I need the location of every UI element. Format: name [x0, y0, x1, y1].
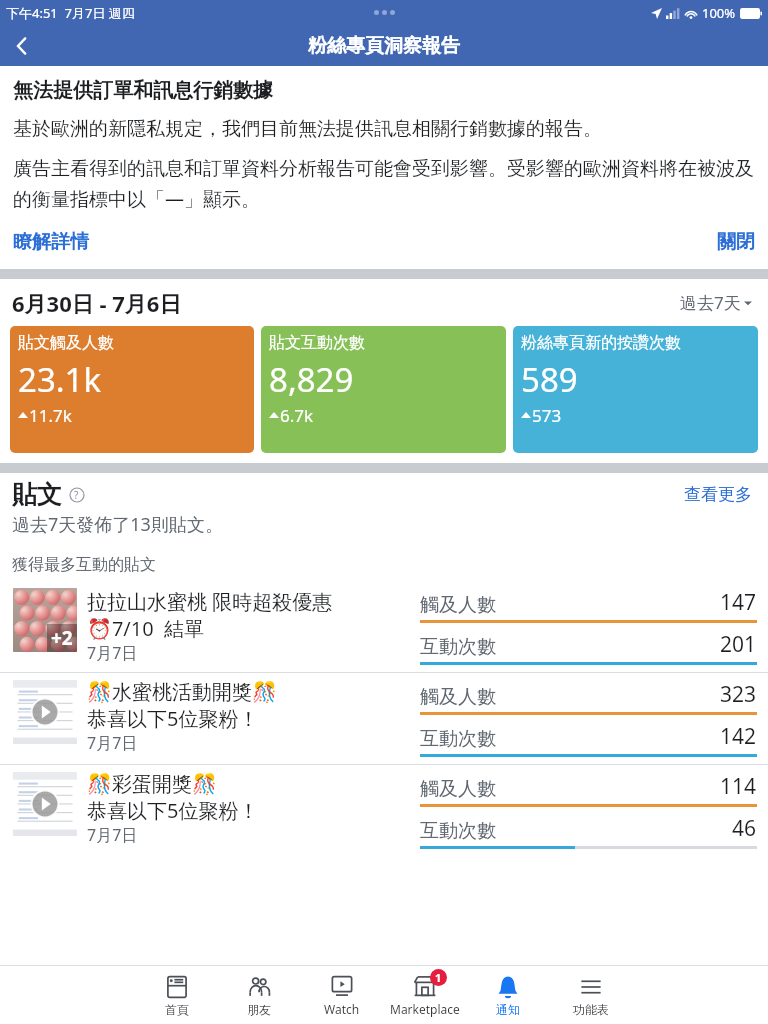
button[interactable]: 關閉 — [717, 227, 755, 257]
staticText: 589 — [521, 357, 578, 402]
staticText: 觸及人數 — [420, 593, 496, 617]
staticText: 7月7日 — [87, 732, 138, 754]
staticText: 貼文觸及人數 — [18, 333, 114, 353]
staticText: 114 — [720, 772, 757, 801]
button[interactable]: Back — [0, 25, 44, 66]
button[interactable]: 過去7天 — [676, 287, 756, 318]
staticText: 粉絲專頁洞察報告 — [308, 34, 460, 58]
button[interactable]: 瞭解詳情 — [13, 227, 89, 257]
staticText: +2 — [51, 625, 73, 651]
button[interactable]: 說明 — [68, 486, 85, 503]
staticText: 恭喜以下5位聚粉！ — [87, 705, 259, 732]
staticText: 觸及人數 — [420, 685, 496, 709]
staticText: 基於歐洲的新隱私規定，我們目前無法提供訊息相關行銷數據的報告。 — [13, 117, 602, 141]
staticText: 廣告主看得到的訊息和訂單資料分析報告可能會受到影響。受影響的歐洲資料將在被波及的… — [13, 157, 755, 211]
staticText: 通知 — [496, 1002, 520, 1017]
staticText: 瞭解詳情 — [13, 230, 89, 254]
button[interactable]: 首頁 — [136, 966, 218, 1024]
staticText: ? — [74, 488, 79, 502]
staticText: 互動次數 — [420, 635, 496, 659]
staticText: 1 — [435, 970, 442, 985]
staticText: 23.1k — [18, 357, 102, 402]
button[interactable]: 通知 — [466, 966, 549, 1024]
staticText: 573 — [532, 404, 562, 427]
staticText: 🎊彩蛋開獎🎊 — [87, 772, 217, 797]
staticText: 8,829 — [269, 357, 354, 402]
staticText: 46 — [732, 814, 757, 843]
staticText: 獲得最多互動的貼文 — [12, 555, 156, 575]
button[interactable]: Watch — [300, 966, 383, 1024]
staticText: ⏰7/10 結單 — [87, 615, 205, 642]
button[interactable]: 貼文互動次數 — [261, 326, 506, 453]
button[interactable]: 貼文觸及人數 — [10, 326, 254, 453]
staticText: 朋友 — [247, 1002, 271, 1017]
staticText: 互動次數 — [420, 819, 496, 843]
staticText: 互動次數 — [420, 727, 496, 751]
staticText: 觸及人數 — [420, 777, 496, 801]
button[interactable]: 🎊水蜜桃活動開獎🎊 — [0, 672, 768, 764]
staticText: 7月7日 — [87, 642, 138, 664]
button[interactable]: 功能表 — [549, 966, 632, 1024]
staticText: Marketplace — [390, 1001, 460, 1017]
staticText: 貼文 — [12, 479, 62, 510]
button[interactable]: 1 — [383, 966, 466, 1024]
staticText: 關閉 — [717, 230, 755, 254]
staticText: 粉絲專頁新的按讚次數 — [521, 333, 681, 353]
staticText: 100% — [702, 4, 736, 22]
staticText: 功能表 — [573, 1002, 609, 1017]
staticText: 下午4:51 7月7日 週四 — [6, 4, 135, 22]
staticText: 首頁 — [165, 1002, 189, 1017]
button[interactable]: 粉絲專頁新的按讚次數 — [513, 326, 758, 453]
staticText: 過去7天 — [680, 291, 741, 314]
button[interactable]: +2 — [0, 581, 768, 672]
staticText: 201 — [720, 630, 757, 659]
staticText: 恭喜以下5位聚粉！ — [87, 797, 259, 824]
staticText: 過去7天發佈了13則貼文。 — [12, 512, 223, 537]
staticText: 323 — [720, 680, 757, 709]
staticText: 查看更多 — [684, 484, 752, 505]
button[interactable]: 🎊彩蛋開獎🎊 — [0, 764, 768, 856]
staticText: 無法提供訂單和訊息行銷數據 — [13, 78, 273, 103]
staticText: 11.7k — [29, 404, 72, 427]
button[interactable]: 查看更多 — [680, 480, 756, 509]
staticText: 貼文互動次數 — [269, 333, 365, 353]
staticText: 147 — [720, 588, 757, 617]
staticText: 6月30日 - 7月6日 — [12, 288, 182, 318]
staticText: 142 — [720, 722, 757, 751]
staticText: 🎊水蜜桃活動開獎🎊 — [87, 680, 277, 705]
staticText: 7月7日 — [87, 824, 138, 846]
staticText: Watch — [324, 1001, 360, 1017]
button[interactable]: 朋友 — [218, 966, 300, 1024]
staticText: 拉拉山水蜜桃 限時超殺優惠 — [87, 588, 333, 615]
staticText: 6.7k — [280, 404, 314, 427]
